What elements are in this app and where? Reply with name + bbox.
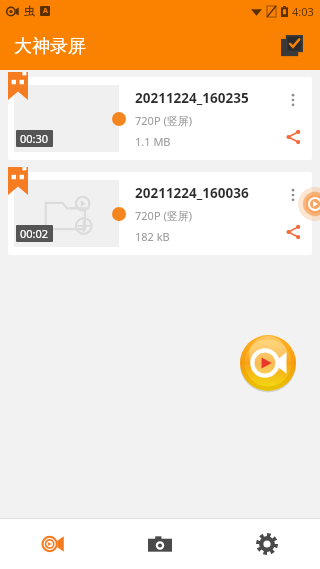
staticText: 720P (竖屏) [135,113,192,128]
staticText: 大神录屏 [14,35,86,58]
staticText: 20211224_160036 [135,184,249,202]
button[interactable]: Floating recorder [298,187,320,221]
button[interactable]: Recordings [0,519,106,569]
button[interactable]: 00:30 [8,77,312,160]
staticText: 虫 [24,4,35,18]
staticText: 720P (竖屏) [135,208,192,223]
staticText: 00:02 [20,226,49,241]
button[interactable]: More options [278,180,308,210]
button[interactable]: Start recording [240,335,296,391]
staticText: A [43,6,48,16]
staticText: 182 kB [135,229,170,244]
button[interactable]: Share [278,122,308,152]
button[interactable]: Share [278,217,308,247]
staticText: 00:30 [20,131,49,146]
button[interactable]: Screenshot [106,519,213,569]
staticText: 20211224_160235 [135,89,249,107]
button[interactable]: Settings [213,519,320,569]
staticText: 4:03 [292,4,314,19]
button[interactable]: 00:02 [8,172,312,255]
staticText: 1.1 MB [135,134,171,149]
button[interactable]: More options [278,85,308,115]
button[interactable]: Select items [274,28,310,64]
